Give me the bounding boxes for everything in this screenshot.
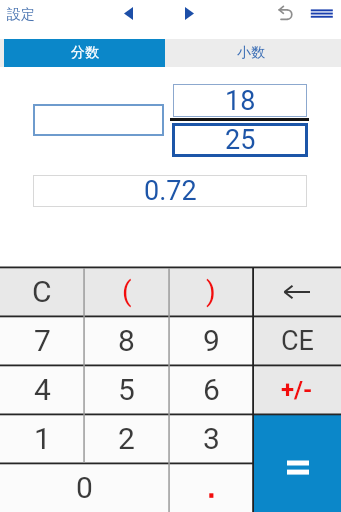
staticText: 3 [203,421,220,456]
button[interactable] [305,0,339,28]
button[interactable]: 小数 [165,39,337,67]
button[interactable] [169,463,253,512]
staticText: 8 [118,323,135,358]
staticText: 6 [203,372,220,407]
button[interactable]: C [0,267,84,316]
button[interactable]: 1 [0,414,84,463]
staticText: ) [206,275,216,308]
staticText: CE [281,325,314,357]
button[interactable] [115,0,143,28]
staticText: +/- [281,376,313,404]
staticText: 分数 [71,44,99,62]
button[interactable]: ) [169,267,253,316]
button[interactable]: 設定 [0,0,60,29]
staticText: 9 [203,323,220,358]
button[interactable]: 18 [173,84,307,117]
button[interactable] [176,0,204,28]
staticText: ( [122,275,132,308]
button[interactable]: 0 [0,463,169,512]
button[interactable] [33,104,164,136]
staticText: 小数 [237,44,265,62]
button[interactable]: 5 [84,365,169,414]
button[interactable]: 7 [0,316,84,365]
button[interactable]: ( [84,267,169,316]
button[interactable]: 4 [0,365,84,414]
button[interactable]: 8 [84,316,169,365]
button[interactable]: 9 [169,316,253,365]
staticText: 25 [225,124,256,156]
staticText: 設定 [7,6,35,24]
button[interactable] [272,0,300,28]
button[interactable]: 3 [169,414,253,463]
staticText: 0.72 [144,175,197,207]
button[interactable]: 分数 [4,39,165,67]
button[interactable]: 25 [172,123,308,157]
button[interactable]: 2 [84,414,169,463]
staticText: 0 [76,470,93,505]
button[interactable]: CE [253,316,341,365]
button[interactable]: +/- [253,365,341,414]
staticText: 5 [118,372,135,407]
button[interactable] [253,267,341,316]
staticText: 7 [34,323,51,358]
staticText: 4 [34,372,51,407]
staticText: C [32,274,52,309]
staticText: 18 [225,85,256,117]
button[interactable] [253,414,341,512]
staticText: 2 [118,421,135,456]
button[interactable]: 6 [169,365,253,414]
staticText: 1 [34,421,51,456]
